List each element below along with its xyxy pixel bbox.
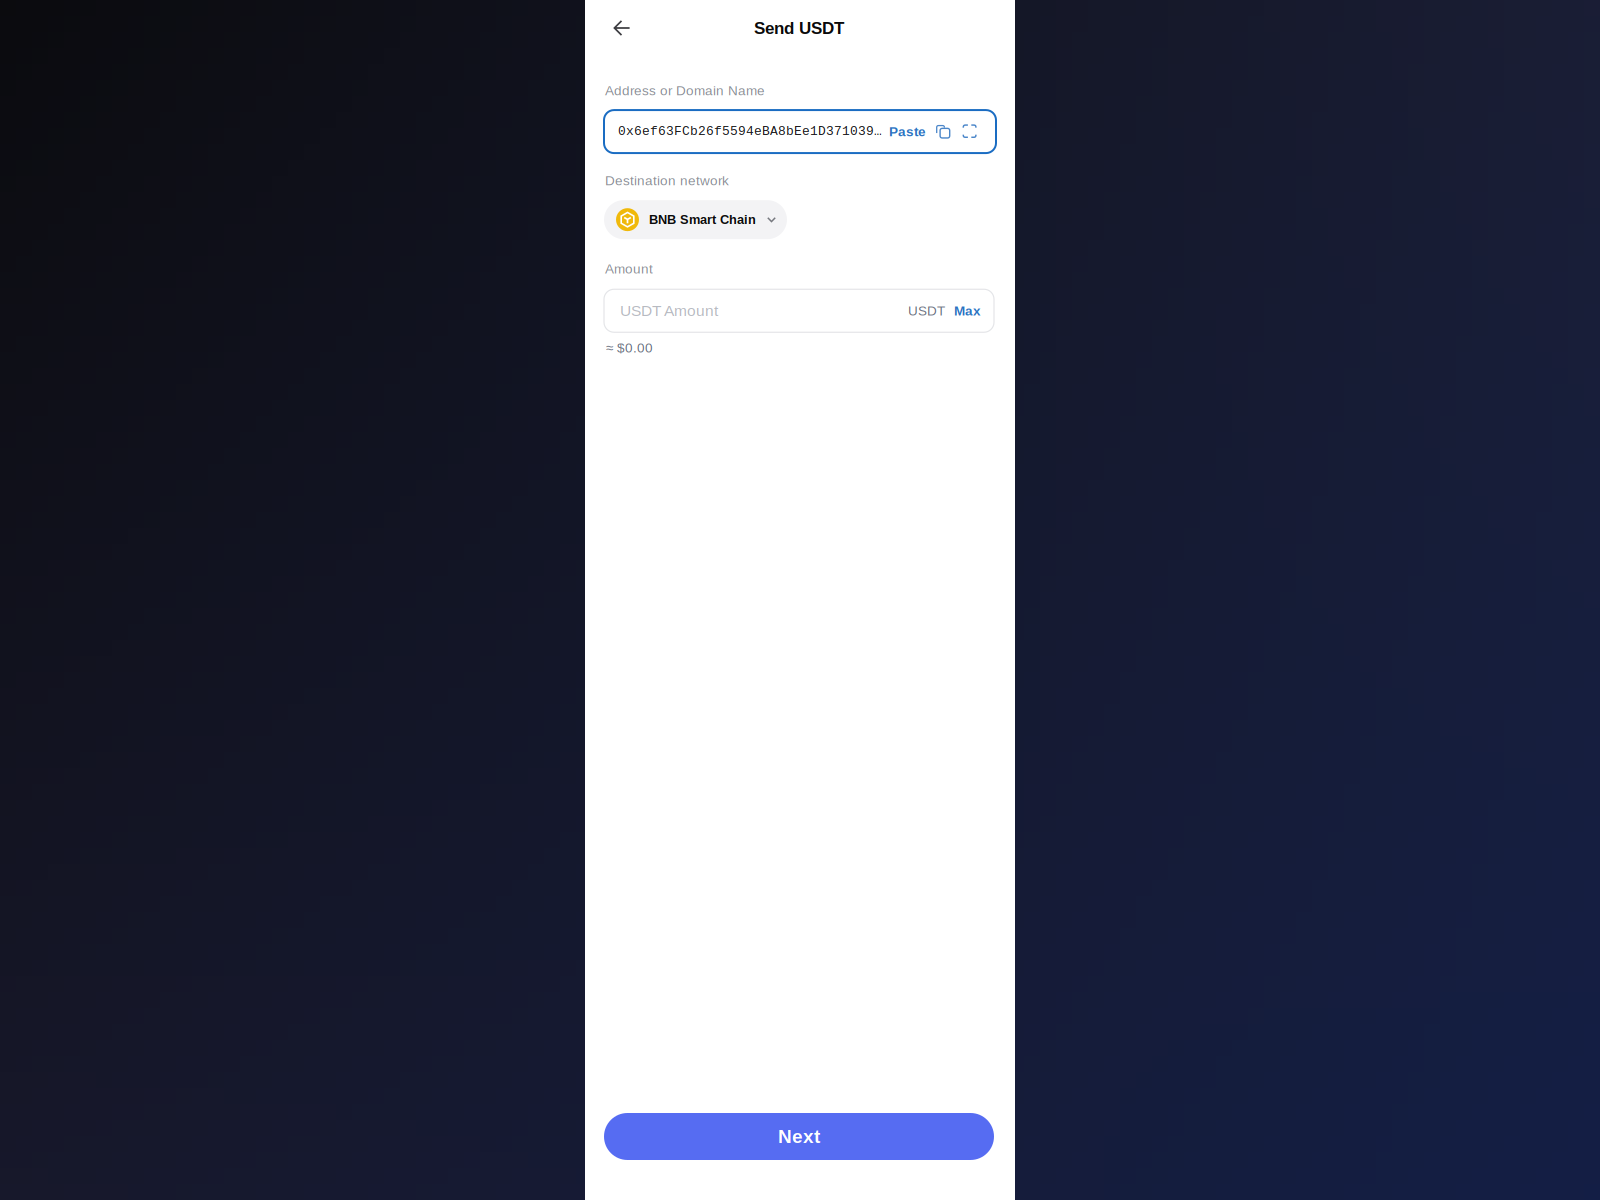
button[interactable]: Paste [885, 124, 930, 139]
button[interactable]: Max [945, 303, 981, 318]
button[interactable]: BNB Smart Chain [604, 200, 787, 239]
staticText: Max [954, 303, 981, 318]
staticText: USDT Amount [620, 302, 718, 319]
staticText: Amount [605, 261, 653, 276]
staticText: 0x6ef63FCb26f5594eBA8bEe1D371039… [618, 124, 882, 139]
staticText: Paste [889, 124, 926, 139]
button[interactable]: Next [604, 1113, 994, 1160]
staticText: USDT [908, 303, 945, 318]
button[interactable]: Copy address [930, 118, 957, 145]
staticText: ≈ $0.00 [606, 340, 653, 355]
staticText: BNB Smart Chain [649, 212, 756, 227]
staticText: Destination network [605, 173, 729, 188]
staticText: Address or Domain Name [605, 83, 765, 98]
staticText: Next [778, 1126, 820, 1147]
button[interactable]: Back [605, 11, 639, 45]
staticText: Send USDT [754, 18, 844, 37]
button[interactable]: Scan QR code [957, 118, 983, 145]
